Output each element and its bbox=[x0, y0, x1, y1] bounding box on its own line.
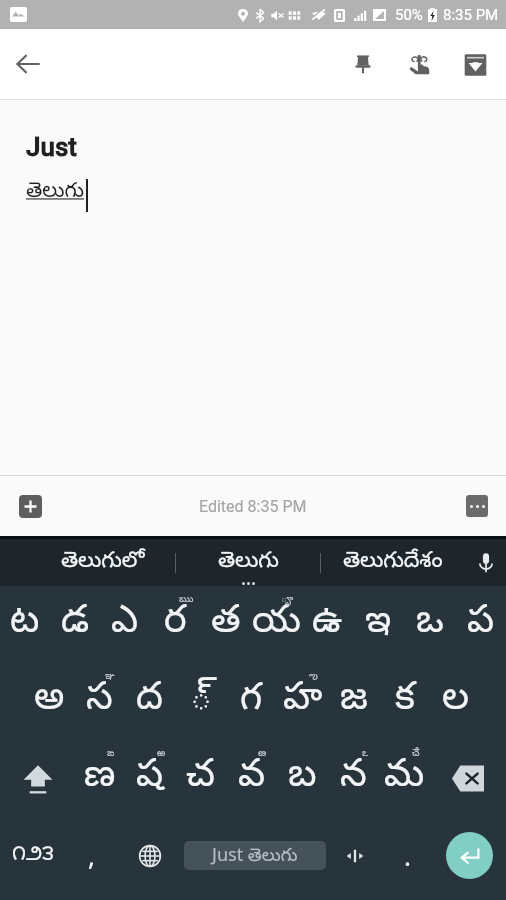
staticText: ఙ bbox=[107, 747, 115, 761]
button[interactable]: తెలుగుదేశం bbox=[321, 539, 465, 586]
button[interactable]: Reminder bbox=[391, 36, 447, 92]
staticText: తెలుగు bbox=[26, 179, 85, 207]
staticText: ర bbox=[164, 599, 187, 650]
button[interactable]: ్ bbox=[175, 663, 226, 740]
staticText: త bbox=[211, 599, 241, 650]
staticText: ఽ bbox=[362, 747, 368, 761]
button[interactable]: ఎ bbox=[100, 586, 150, 663]
button[interactable]: మ bbox=[379, 740, 430, 817]
staticText: క bbox=[395, 676, 415, 727]
button[interactable]: బ bbox=[277, 740, 328, 817]
button[interactable]: Pin note bbox=[335, 36, 391, 92]
button[interactable]: Back bbox=[0, 36, 56, 92]
button[interactable]: Change language bbox=[117, 817, 183, 894]
button[interactable]: ద bbox=[124, 663, 175, 740]
staticText: ఞ bbox=[105, 670, 115, 684]
staticText: ణ bbox=[84, 753, 116, 804]
button[interactable]: న bbox=[328, 740, 379, 817]
button[interactable]: ట bbox=[0, 586, 50, 663]
button[interactable]: ణ bbox=[75, 740, 125, 817]
staticText: జ bbox=[340, 676, 368, 727]
staticText: ఒ bbox=[416, 599, 444, 650]
button[interactable]: స bbox=[74, 663, 124, 740]
staticText: ౧౨౩ bbox=[12, 842, 54, 870]
staticText: ఎ bbox=[111, 599, 139, 650]
staticText: , bbox=[88, 838, 95, 873]
button[interactable]: తెలుగులో bbox=[30, 539, 175, 586]
staticText: ద bbox=[136, 676, 163, 727]
staticText: ట bbox=[10, 599, 40, 650]
button[interactable]: వ bbox=[226, 740, 277, 817]
staticText: య bbox=[252, 599, 301, 650]
button[interactable]: Archive bbox=[447, 36, 503, 92]
staticText: తెలుగుదేశం bbox=[343, 548, 443, 578]
staticText: స bbox=[86, 676, 113, 727]
button[interactable]: చ bbox=[175, 740, 226, 817]
button[interactable]: ష bbox=[125, 740, 175, 817]
button[interactable]: ర bbox=[150, 586, 200, 663]
staticText: గ bbox=[240, 676, 263, 727]
staticText: ౘ bbox=[412, 747, 420, 761]
button[interactable]: ఒ bbox=[404, 586, 455, 663]
button[interactable]: ౧౨౩ bbox=[0, 817, 66, 894]
staticText: ఇ bbox=[365, 599, 392, 650]
button[interactable]: అ bbox=[24, 663, 74, 740]
staticText: బ bbox=[288, 753, 317, 804]
button[interactable]: , bbox=[66, 817, 117, 894]
staticText: ౄ bbox=[281, 593, 294, 607]
button[interactable]: డ bbox=[50, 586, 100, 663]
staticText: తెలుగు bbox=[218, 548, 279, 578]
button[interactable]: జ bbox=[328, 663, 379, 740]
button[interactable]: హ bbox=[277, 663, 328, 740]
staticText: చ bbox=[186, 753, 215, 804]
button[interactable]: య bbox=[251, 586, 302, 663]
button[interactable]: Backspace bbox=[430, 740, 506, 817]
button[interactable]: ప bbox=[455, 586, 506, 663]
button[interactable]: Just తెలుగు bbox=[183, 817, 327, 894]
button[interactable]: Add bbox=[19, 495, 42, 518]
button[interactable]: Enter bbox=[432, 817, 506, 894]
button[interactable]: త bbox=[200, 586, 251, 663]
staticText: హ bbox=[283, 676, 323, 727]
staticText: ఌ bbox=[309, 670, 318, 684]
staticText: మ bbox=[384, 753, 425, 804]
button[interactable]: తెలుగు bbox=[176, 539, 320, 586]
staticText: . bbox=[404, 838, 411, 873]
button[interactable]: . bbox=[382, 817, 432, 894]
staticText: Just తెలుగు bbox=[212, 842, 298, 870]
button[interactable]: ఉ bbox=[302, 586, 353, 663]
button[interactable]: Shift bbox=[0, 740, 75, 817]
staticText: వ bbox=[238, 753, 266, 804]
staticText: న bbox=[340, 753, 367, 804]
staticText: 8:35 PM bbox=[443, 6, 499, 24]
staticText: ఴ bbox=[258, 747, 267, 761]
staticText: ఱ bbox=[157, 747, 166, 761]
button[interactable]: More options bbox=[466, 495, 488, 517]
staticText: ఋ bbox=[179, 593, 194, 607]
button[interactable]: గ bbox=[226, 663, 277, 740]
staticText: అ bbox=[34, 676, 65, 727]
button[interactable]: Cursor control bbox=[327, 817, 382, 894]
staticText: ్ bbox=[190, 676, 212, 727]
staticText: ప bbox=[467, 599, 495, 650]
button[interactable]: Voice input bbox=[465, 539, 506, 586]
staticText: ఉ bbox=[312, 599, 343, 650]
button[interactable]: క bbox=[379, 663, 430, 740]
staticText: ష bbox=[136, 753, 164, 804]
staticText: 50% bbox=[395, 6, 423, 24]
staticText: Just bbox=[26, 132, 77, 162]
staticText: డ bbox=[61, 599, 90, 650]
staticText: తెలుగులో bbox=[61, 548, 145, 578]
button[interactable]: ల bbox=[430, 663, 481, 740]
staticText: ల bbox=[442, 676, 469, 727]
button[interactable]: ఇ bbox=[353, 586, 404, 663]
staticText: Edited 8:35 PM bbox=[199, 497, 307, 516]
